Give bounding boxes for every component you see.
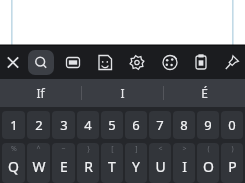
button[interactable]: 2: [27, 111, 50, 139]
button[interactable]: É: [164, 79, 245, 107]
staticText: 6: [132, 116, 140, 134]
staticText: 7: [156, 116, 164, 134]
button[interactable]: 6: [125, 111, 147, 139]
staticText: E: [60, 157, 68, 176]
staticText: O: [203, 157, 214, 176]
button[interactable]: Close toolbar: [0, 46, 26, 79]
button[interactable]: Search: [28, 50, 54, 75]
staticText: É: [201, 85, 208, 101]
button[interactable]: 9: [197, 111, 219, 139]
staticText: 9: [204, 116, 212, 134]
button[interactable]: (: [197, 143, 219, 183]
staticText: <: [158, 144, 163, 154]
button[interactable]: Clipboard: [188, 46, 214, 79]
staticText: Q: [8, 157, 19, 176]
button[interactable]: }: [77, 143, 99, 183]
staticText: (: [207, 144, 210, 154]
button[interactable]: 8: [173, 111, 195, 139]
button[interactable]: [: [101, 143, 123, 183]
staticText: Y: [132, 157, 140, 176]
staticText: 3: [60, 116, 68, 134]
staticText: 5: [108, 116, 116, 134]
staticText: [: [111, 144, 114, 154]
staticText: U: [155, 157, 166, 176]
button[interactable]: GIF: [60, 46, 86, 79]
staticText: If: [36, 85, 45, 101]
staticText: I: [120, 85, 125, 101]
staticText: ]: [135, 144, 138, 154]
button[interactable]: 1: [2, 111, 25, 139]
staticText: 0: [228, 116, 236, 134]
staticText: %: [11, 144, 17, 154]
button[interactable]: ^: [27, 143, 50, 183]
button[interactable]: 3: [52, 111, 75, 139]
staticText: I: [182, 157, 187, 176]
staticText: 2: [35, 116, 43, 134]
staticText: >: [182, 144, 187, 154]
button[interactable]: >: [173, 143, 195, 183]
staticText: 8: [180, 116, 188, 134]
staticText: R: [84, 157, 93, 176]
button[interactable]: Emoji kitchen: [157, 46, 183, 79]
button[interactable]: 5: [101, 111, 123, 139]
button[interactable]: If: [0, 79, 81, 107]
button[interactable]: ]: [125, 143, 147, 183]
staticText: 4: [84, 116, 92, 134]
staticText: ): [231, 144, 234, 154]
staticText: T: [108, 157, 116, 176]
button[interactable]: Pin toolbar: [219, 46, 245, 79]
staticText: W: [32, 157, 46, 176]
staticText: P: [228, 157, 237, 176]
button[interactable]: I: [82, 79, 163, 107]
staticText: 1: [10, 116, 18, 134]
button[interactable]: ~: [52, 143, 75, 183]
button[interactable]: %: [2, 143, 25, 183]
button[interactable]: ): [221, 143, 243, 183]
button[interactable]: 7: [149, 111, 171, 139]
button[interactable]: Stickers: [92, 46, 118, 79]
button[interactable]: <: [149, 143, 171, 183]
staticText: ~: [61, 144, 66, 154]
button[interactable]: 0: [221, 111, 243, 139]
staticText: ^: [36, 144, 41, 154]
button[interactable]: Settings: [124, 46, 150, 79]
staticText: }: [87, 144, 90, 154]
button[interactable]: 4: [77, 111, 99, 139]
